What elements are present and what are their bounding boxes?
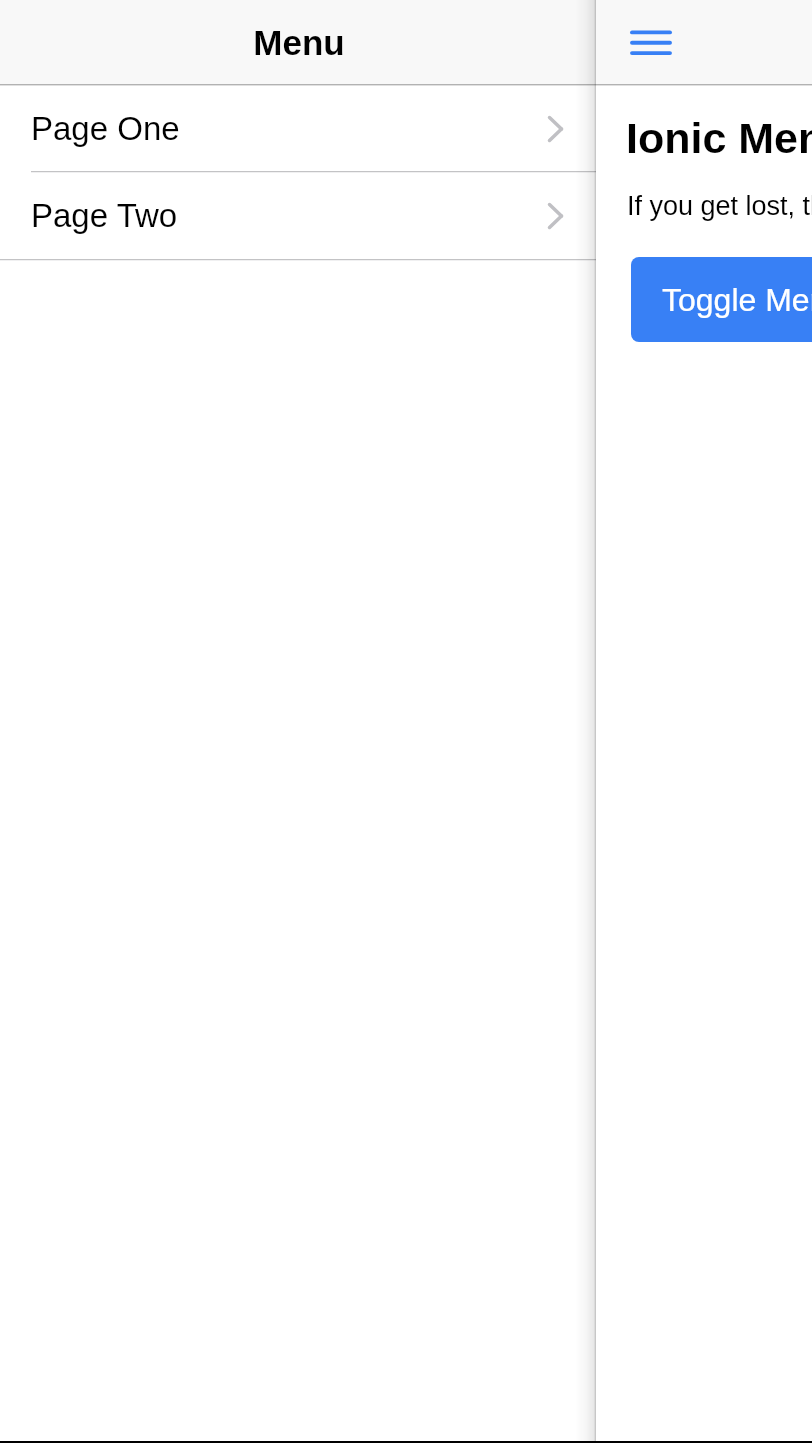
button[interactable]: Page Two [0,172,596,260]
staticText: Toggle Menu [662,282,812,318]
staticText: Page One [31,110,180,147]
button[interactable]: Open menu [626,14,676,70]
staticText: Page Two [31,197,178,234]
staticText: Menu [253,23,345,62]
button[interactable]: Toggle Menu [631,257,812,342]
button[interactable]: Page One [0,86,596,172]
staticText: If you get lost, the menu is there. [627,191,812,221]
staticText: Ionic Menu [626,114,812,162]
